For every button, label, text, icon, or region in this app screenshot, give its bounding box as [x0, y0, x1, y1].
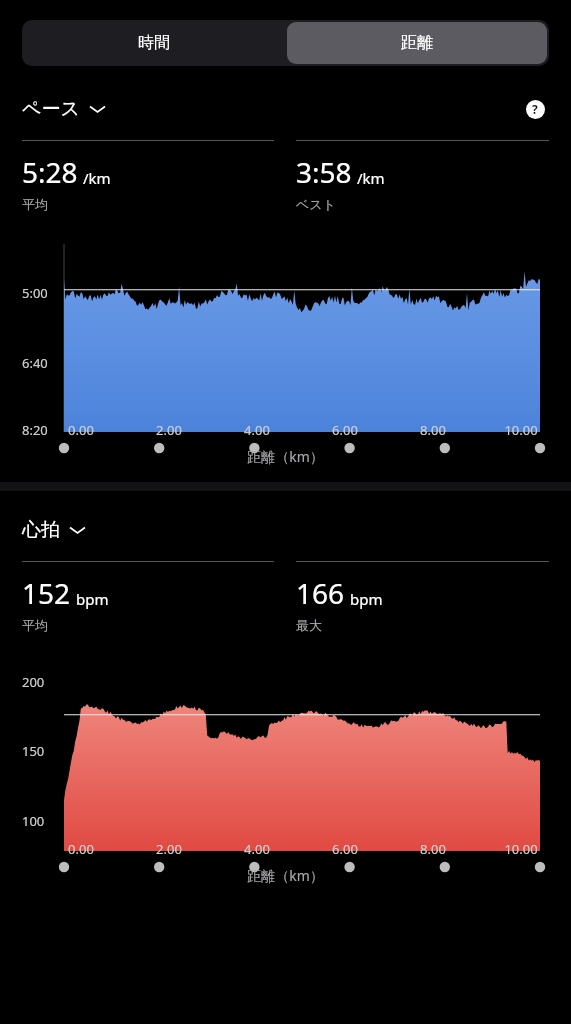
staticText: 距離（km） [0, 866, 571, 885]
staticText: 最大 [296, 617, 322, 633]
staticText: bpm [350, 589, 383, 609]
staticText: 0.00 [68, 840, 94, 858]
staticText: 時間 [138, 33, 170, 53]
button[interactable]: 時間 [22, 20, 285, 66]
staticText: 152 [22, 574, 71, 612]
staticText: 5:00 [22, 284, 48, 302]
button[interactable]: 166 [296, 561, 549, 633]
staticText: 4.00 [244, 840, 270, 858]
staticText: 2.00 [156, 421, 182, 439]
staticText: 100 [22, 812, 45, 830]
button[interactable]: 距離 [287, 22, 547, 64]
staticText: 10.00 [504, 840, 538, 858]
staticText: ベスト [296, 196, 336, 212]
staticText: 平均 [22, 617, 48, 633]
staticText: bpm [76, 589, 109, 609]
staticText: 平均 [22, 196, 48, 212]
staticText: 166 [296, 574, 345, 612]
button[interactable]: 152 [22, 561, 274, 633]
staticText: 距離（km） [0, 447, 571, 466]
staticText: 8.00 [420, 421, 446, 439]
staticText: 10.00 [504, 421, 538, 439]
button[interactable]: 3:58 [296, 140, 549, 212]
staticText: 心拍 [22, 518, 60, 542]
staticText: 6.00 [332, 840, 358, 858]
staticText: 距離 [401, 33, 433, 53]
staticText: 0.00 [68, 421, 94, 439]
button[interactable]: 5:28 [22, 140, 274, 212]
staticText: 6:40 [22, 354, 48, 372]
staticText: 8.00 [420, 840, 446, 858]
staticText: 3:58 [296, 153, 352, 191]
staticText: 200 [22, 673, 45, 691]
staticText: ? [532, 101, 538, 117]
staticText: /km [357, 168, 385, 188]
staticText: 150 [22, 742, 45, 760]
staticText: ペース [22, 97, 80, 121]
staticText: /km [83, 168, 111, 188]
staticText: 5:28 [22, 153, 78, 191]
staticText: 2.00 [156, 840, 182, 858]
staticText: 4.00 [244, 421, 270, 439]
staticText: 8:20 [22, 421, 48, 439]
button[interactable]: ペース [22, 97, 111, 121]
button[interactable]: Help [521, 95, 549, 123]
button[interactable]: 心拍 [22, 518, 91, 542]
staticText: 6.00 [332, 421, 358, 439]
